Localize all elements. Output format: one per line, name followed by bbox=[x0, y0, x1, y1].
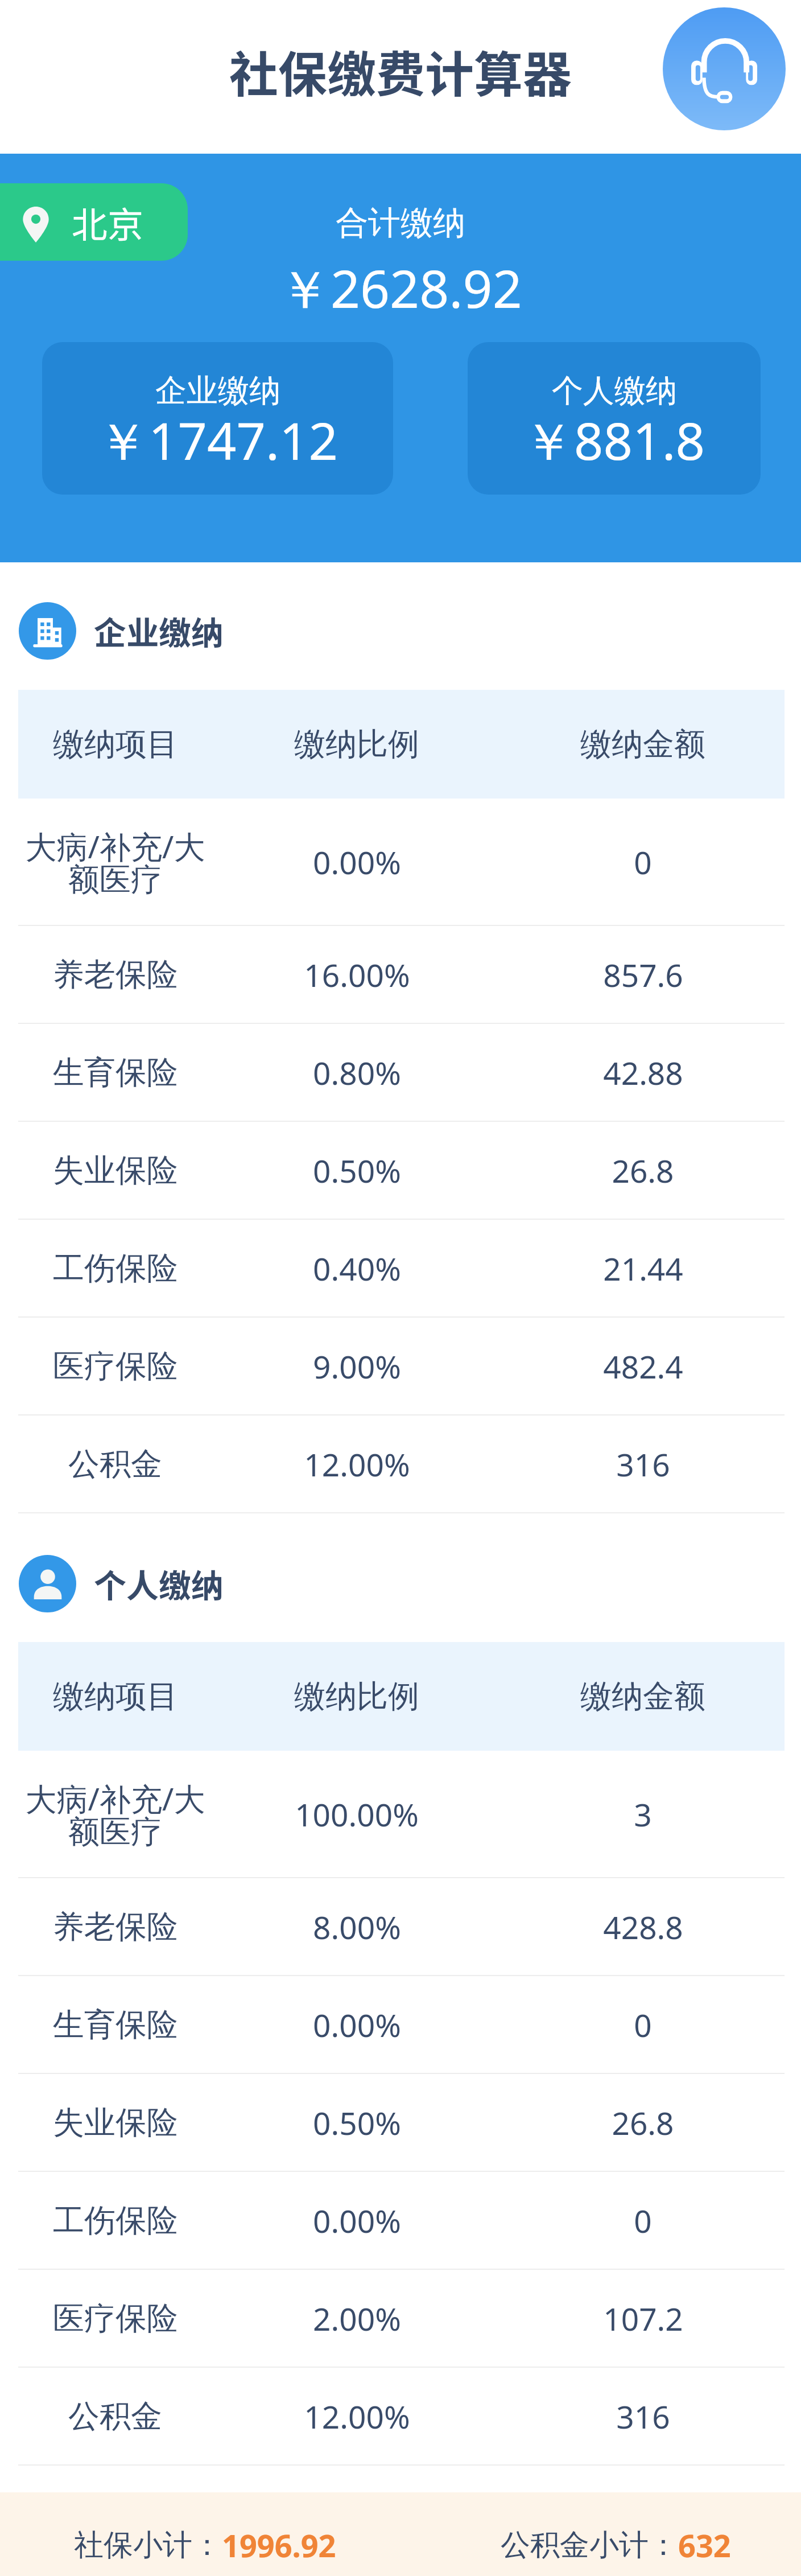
button[interactable]: 公积金 bbox=[18, 1415, 785, 1512]
button[interactable]: 北京 bbox=[0, 183, 188, 261]
button[interactable]: 失业保险 bbox=[18, 1122, 785, 1219]
staticText: 公积金 bbox=[68, 2397, 162, 2436]
button[interactable]: 在线客服 bbox=[663, 7, 786, 130]
button[interactable]: 社保小计： bbox=[74, 2524, 336, 2566]
staticText: 42.88 bbox=[603, 1051, 683, 1094]
staticText: 0.00% bbox=[313, 841, 401, 883]
staticText: 632 bbox=[678, 2524, 731, 2566]
staticText: 316 bbox=[616, 2395, 670, 2438]
staticText: 社保缴费计算器 bbox=[229, 35, 572, 106]
staticText: 工伤保险 bbox=[53, 1249, 178, 1288]
staticText: 大病/补充/大额医疗 bbox=[20, 1777, 210, 1851]
button[interactable]: 养老保险 bbox=[18, 1878, 785, 1975]
staticText: 生育保险 bbox=[53, 1053, 178, 1092]
staticText: 缴纳比例 bbox=[294, 725, 419, 764]
staticText: 工伤保险 bbox=[53, 2201, 178, 2240]
staticText: 合计缴纳 bbox=[336, 203, 465, 244]
button[interactable]: 失业保险 bbox=[18, 2074, 785, 2171]
button[interactable]: 医疗保险 bbox=[18, 1318, 785, 1414]
staticText: 公积金 bbox=[68, 1445, 162, 1484]
staticText: 3 bbox=[634, 1793, 652, 1836]
staticText: 大病/补充/大额医疗 bbox=[20, 825, 210, 899]
staticText: 0.40% bbox=[313, 1247, 401, 1290]
button[interactable]: 生育保险 bbox=[18, 1024, 785, 1121]
button[interactable]: 个人缴纳 bbox=[468, 342, 761, 495]
staticText: 医疗保险 bbox=[53, 2299, 178, 2338]
staticText: ￥881.8 bbox=[523, 405, 705, 475]
button[interactable]: 养老保险 bbox=[18, 926, 785, 1023]
staticText: 2.00% bbox=[313, 2297, 401, 2340]
button[interactable]: 公积金小计： bbox=[501, 2524, 731, 2566]
button[interactable]: 公积金 bbox=[18, 2368, 785, 2464]
staticText: 0 bbox=[634, 2199, 652, 2242]
button[interactable]: 医疗保险 bbox=[18, 2270, 785, 2367]
staticText: 0 bbox=[634, 2003, 652, 2046]
staticText: 企业缴纳 bbox=[94, 607, 224, 655]
staticText: 医疗保险 bbox=[53, 1347, 178, 1386]
button[interactable]: 生育保险 bbox=[18, 1976, 785, 2073]
staticText: 缴纳项目 bbox=[53, 1677, 178, 1716]
staticText: 失业保险 bbox=[53, 1151, 178, 1190]
staticText: 缴纳金额 bbox=[580, 725, 705, 764]
staticText: 0.80% bbox=[313, 1051, 401, 1094]
staticText: 16.00% bbox=[304, 953, 410, 996]
staticText: 8.00% bbox=[313, 1906, 401, 1948]
staticText: 428.8 bbox=[603, 1906, 683, 1948]
staticText: 北京 bbox=[72, 196, 143, 248]
button[interactable]: 大病/补充/大额医疗 bbox=[18, 799, 785, 925]
staticText: ￥1747.12 bbox=[97, 405, 338, 475]
staticText: 0.50% bbox=[313, 2101, 401, 2144]
staticText: 个人缴纳 bbox=[552, 371, 677, 410]
staticText: 0.50% bbox=[313, 1149, 401, 1192]
staticText: 316 bbox=[616, 1443, 670, 1485]
staticText: 9.00% bbox=[313, 1345, 401, 1388]
staticText: ￥2628.92 bbox=[279, 253, 522, 323]
staticText: 0 bbox=[634, 841, 652, 883]
staticText: 个人缴纳 bbox=[94, 1560, 224, 1607]
staticText: 21.44 bbox=[603, 1247, 683, 1290]
staticText: 26.8 bbox=[612, 1149, 674, 1192]
staticText: 失业保险 bbox=[53, 2103, 178, 2142]
staticText: 缴纳金额 bbox=[580, 1677, 705, 1716]
staticText: 1996.92 bbox=[222, 2524, 336, 2566]
staticText: 公积金小计： bbox=[501, 2526, 678, 2564]
staticText: 0.00% bbox=[313, 2003, 401, 2046]
staticText: 857.6 bbox=[603, 953, 683, 996]
staticText: 养老保险 bbox=[53, 1907, 178, 1947]
staticText: 社保小计： bbox=[74, 2526, 222, 2564]
staticText: 26.8 bbox=[612, 2101, 674, 2144]
staticText: 107.2 bbox=[603, 2297, 683, 2340]
staticText: 100.00% bbox=[295, 1793, 419, 1836]
button[interactable]: 个人缴纳 bbox=[19, 1555, 801, 1612]
button[interactable]: 企业缴纳 bbox=[42, 342, 393, 495]
button[interactable]: 企业缴纳 bbox=[19, 602, 801, 660]
staticText: 缴纳比例 bbox=[294, 1677, 419, 1716]
staticText: 养老保险 bbox=[53, 955, 178, 994]
staticText: 缴纳项目 bbox=[53, 725, 178, 764]
staticText: 0.00% bbox=[313, 2199, 401, 2242]
button[interactable]: 工伤保险 bbox=[18, 2172, 785, 2269]
button[interactable]: 大病/补充/大额医疗 bbox=[18, 1751, 785, 1877]
staticText: 企业缴纳 bbox=[155, 371, 280, 410]
staticText: 12.00% bbox=[304, 1443, 410, 1485]
button[interactable]: 工伤保险 bbox=[18, 1220, 785, 1316]
staticText: 生育保险 bbox=[53, 2005, 178, 2044]
staticText: 12.00% bbox=[304, 2395, 410, 2438]
staticText: 482.4 bbox=[603, 1345, 683, 1388]
